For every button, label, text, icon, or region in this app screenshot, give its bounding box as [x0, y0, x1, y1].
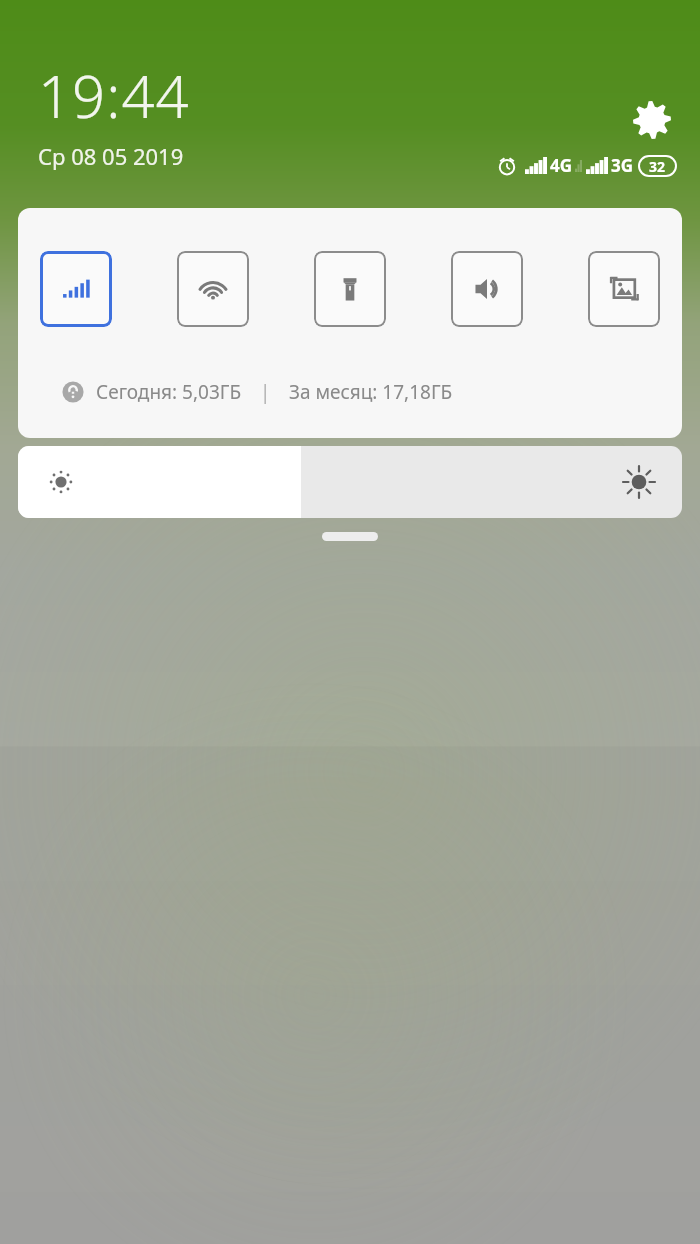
- staticText: |: [260, 379, 271, 405]
- button[interactable]: Сегодня: 5,03ГБ: [62, 379, 453, 405]
- staticText: 4G: [550, 154, 573, 177]
- button[interactable]: Expand panel: [322, 532, 378, 541]
- staticText: За месяц: 17,18ГБ: [289, 379, 453, 405]
- staticText: 32: [649, 157, 666, 176]
- staticText: 3G: [611, 154, 634, 177]
- staticText: Сегодня: 5,03ГБ: [96, 379, 242, 405]
- button[interactable]: Mobile data: [40, 251, 112, 327]
- button[interactable]: Screenshot: [588, 251, 660, 327]
- button[interactable]: Brightness: [18, 446, 682, 518]
- button[interactable]: Wi-Fi: [177, 251, 249, 327]
- button[interactable]: Settings: [628, 96, 676, 144]
- staticText: 19:44: [38, 56, 190, 135]
- button[interactable]: Volume: [451, 251, 523, 327]
- staticText: Ср 08 05 2019: [38, 141, 184, 171]
- button[interactable]: Flashlight: [314, 251, 386, 327]
